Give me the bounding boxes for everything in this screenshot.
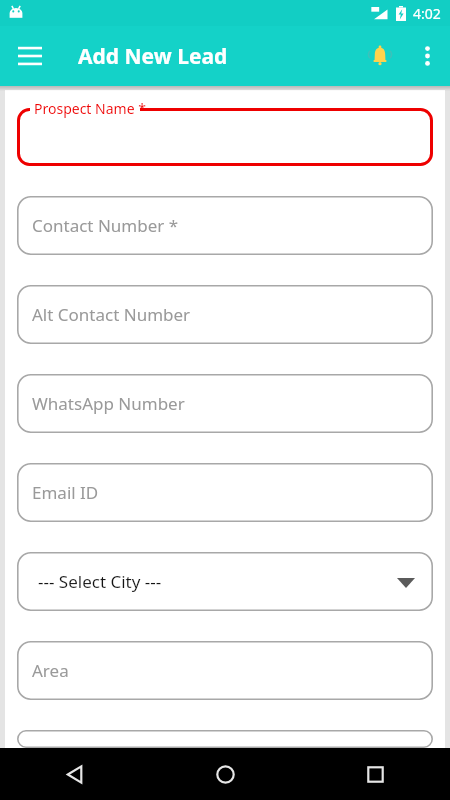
staticText: 4:02 <box>413 4 441 23</box>
staticText: --- Select City --- <box>38 570 162 593</box>
staticText: Contact Number * <box>32 214 179 237</box>
button[interactable]: More options <box>404 33 450 79</box>
button[interactable]: Email ID <box>17 463 433 522</box>
staticText: Alt Contact Number <box>32 303 191 326</box>
button[interactable]: Open navigation menu <box>7 33 53 79</box>
staticText: WhatsApp Number <box>32 392 185 415</box>
button[interactable] <box>17 730 433 748</box>
button[interactable]: WhatsApp Number <box>17 374 433 433</box>
button[interactable]: Select City <box>17 552 433 611</box>
button[interactable]: Alt Contact Number <box>17 285 433 344</box>
button[interactable]: Home <box>150 748 300 800</box>
staticText: Email ID <box>32 481 99 504</box>
button[interactable]: Notifications <box>356 32 404 80</box>
staticText: Area <box>32 659 69 682</box>
staticText: Prospect Name * <box>34 99 146 118</box>
button[interactable]: Prospect Name * <box>17 108 433 166</box>
button[interactable]: Area <box>17 641 433 700</box>
button[interactable]: Contact Number * <box>17 196 433 255</box>
button[interactable]: Back <box>0 748 150 800</box>
button[interactable]: Recent apps <box>300 748 450 800</box>
staticText: Add New Lead <box>78 42 228 71</box>
